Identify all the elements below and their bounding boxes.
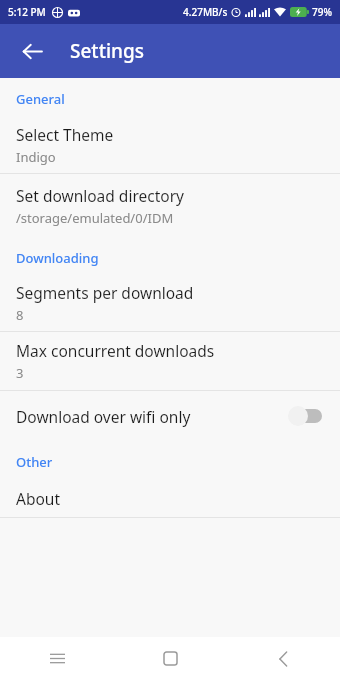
button[interactable]: Select Theme (0, 116, 340, 173)
button[interactable]: About (0, 479, 340, 517)
button[interactable]: Download over wifi only toggle (288, 405, 324, 427)
staticText: Downloading (16, 249, 99, 267)
button[interactable]: Back (227, 637, 340, 680)
button[interactable]: Home (114, 637, 227, 680)
staticText: Set download directory (16, 185, 184, 206)
button[interactable]: Recent apps (0, 637, 114, 680)
button[interactable]: Max concurrent downloads (0, 332, 340, 390)
staticText: 79% (312, 5, 332, 19)
staticText: 8 (16, 306, 24, 324)
staticText: 4.27MB/s (183, 5, 228, 19)
button[interactable]: Download over wifi only (0, 391, 340, 441)
button[interactable]: Segments per download (0, 275, 340, 331)
button[interactable]: Set download directory (0, 174, 340, 237)
button[interactable]: Back (10, 29, 54, 73)
staticText: 3 (16, 364, 24, 382)
staticText: 5:12 PM (8, 5, 46, 19)
staticText: Max concurrent downloads (16, 340, 215, 361)
staticText: Select Theme (16, 124, 114, 145)
staticText: About (16, 488, 60, 509)
staticText: Settings (70, 38, 144, 64)
staticText: /storage/emulated/0/IDM (16, 209, 174, 227)
staticText: Indigo (16, 148, 56, 166)
staticText: General (16, 90, 65, 108)
staticText: Segments per download (16, 282, 194, 303)
staticText: Other (16, 453, 53, 471)
staticText: Download over wifi only (16, 406, 191, 427)
